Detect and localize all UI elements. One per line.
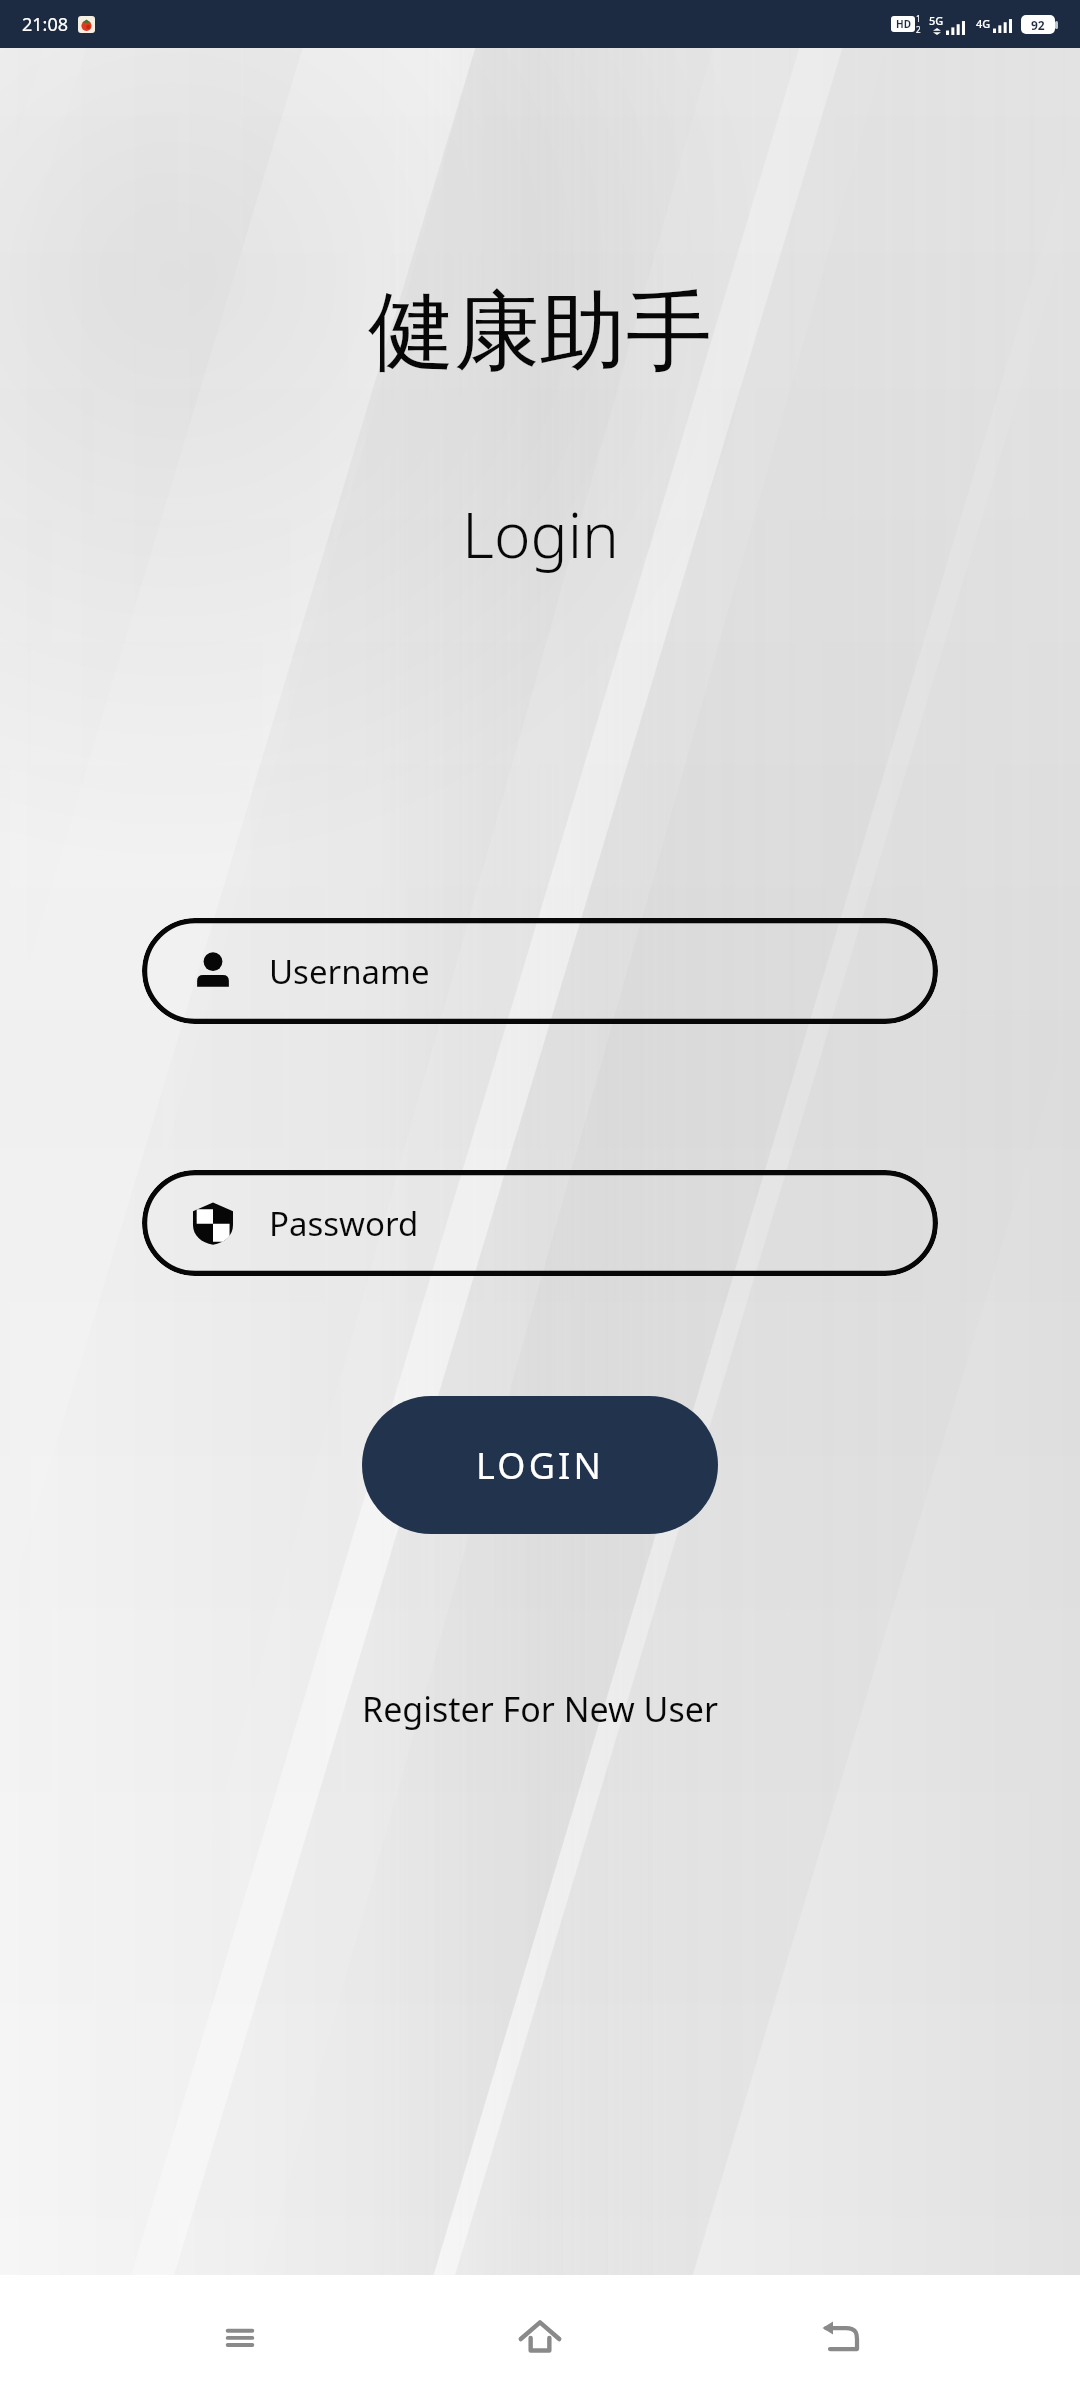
staticText: 2 — [916, 24, 921, 35]
staticText: 1 — [916, 13, 921, 24]
staticText: 92 — [1031, 17, 1045, 33]
staticText: Register For New User — [362, 1686, 718, 1732]
staticText: 5G — [929, 13, 944, 28]
staticText: HD — [896, 17, 911, 31]
staticText: 4G — [976, 16, 991, 31]
staticText: 健康助手 — [368, 278, 712, 386]
button[interactable]: LOGIN — [362, 1396, 718, 1534]
button[interactable]: Password — [142, 1170, 938, 1276]
staticText: 21:08 — [22, 12, 69, 37]
staticText: LOGIN — [476, 1441, 605, 1490]
button[interactable]: Recent apps — [180, 2278, 300, 2398]
button[interactable]: Home — [480, 2278, 600, 2398]
staticText: Password — [269, 1201, 419, 1246]
button[interactable]: Username — [142, 918, 938, 1024]
button[interactable]: Register For New User — [352, 1680, 728, 1738]
staticText: Login — [462, 492, 619, 576]
staticText: Username — [269, 949, 430, 994]
button[interactable]: Back — [780, 2278, 900, 2398]
